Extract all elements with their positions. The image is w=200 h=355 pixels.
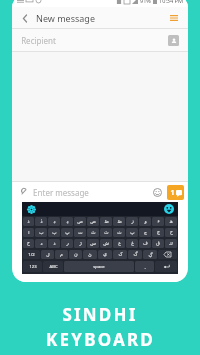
button[interactable]: ڏ xyxy=(35,217,47,226)
button[interactable]: Recipient xyxy=(12,29,188,51)
button[interactable]: Send xyxy=(167,185,184,200)
button[interactable]: گ xyxy=(128,250,142,259)
button[interactable]: ٿ xyxy=(87,228,99,237)
button[interactable]: ص xyxy=(74,217,86,226)
button[interactable]: غ xyxy=(126,239,138,248)
button[interactable]: م xyxy=(55,250,68,259)
staticText: ظ xyxy=(117,219,122,224)
button[interactable]: More options xyxy=(167,11,181,25)
button[interactable]: ڳ xyxy=(143,250,157,259)
staticText: ض xyxy=(90,219,96,224)
button[interactable]: Emoji xyxy=(151,186,164,199)
button[interactable]: و xyxy=(139,217,151,226)
button[interactable]: ڙ xyxy=(74,239,86,248)
button[interactable]: ظ xyxy=(113,217,125,226)
staticText: ي xyxy=(103,252,107,257)
staticText: د xyxy=(40,241,43,246)
staticText: New message xyxy=(36,12,95,24)
button[interactable]: ذ xyxy=(48,239,60,248)
button[interactable]: ٽ xyxy=(100,228,112,237)
button[interactable]: ڍ xyxy=(61,217,73,226)
button[interactable]: ط xyxy=(100,217,112,226)
staticText: ء xyxy=(157,219,160,224)
button[interactable]: ڀ xyxy=(61,228,73,237)
button[interactable]: Enter xyxy=(155,261,177,272)
staticText: . xyxy=(144,264,146,270)
button[interactable]: Backspace xyxy=(158,250,177,259)
button[interactable]: ب xyxy=(35,228,47,237)
staticText: ڻ xyxy=(88,252,92,257)
staticText: خ xyxy=(27,241,30,246)
staticText: ڏ xyxy=(40,219,43,224)
button[interactable]: ك xyxy=(165,239,177,248)
staticText: KEYBOARD xyxy=(46,328,155,351)
button[interactable]: ن xyxy=(69,250,82,259)
button[interactable]: 123 xyxy=(23,261,42,272)
button[interactable]: ي xyxy=(98,250,112,259)
button[interactable]: پ xyxy=(126,228,138,237)
staticText: ا xyxy=(28,230,30,235)
staticText: م xyxy=(60,252,63,257)
button[interactable]: Attach xyxy=(18,186,30,198)
staticText: 123 xyxy=(29,264,37,270)
staticText: ڀ xyxy=(65,230,70,235)
button[interactable]: ض xyxy=(87,217,99,226)
button[interactable]: ک xyxy=(113,250,127,259)
button[interactable]: Back xyxy=(12,7,188,28)
staticText: ڄ xyxy=(157,230,160,235)
staticText: پ xyxy=(130,230,135,235)
button[interactable]: ر xyxy=(61,239,73,248)
staticText: ABC xyxy=(49,264,58,270)
staticText: ڌ xyxy=(27,219,30,224)
button[interactable]: ABC xyxy=(43,261,63,272)
button[interactable]: ڌ xyxy=(23,217,34,226)
staticText: 1/2 xyxy=(28,252,35,258)
button[interactable]: ا xyxy=(23,228,34,237)
button[interactable]: ع xyxy=(113,239,125,248)
button[interactable]: ڄ xyxy=(152,228,164,237)
staticText: 10:34 PM xyxy=(159,0,183,4)
staticText: ف xyxy=(143,241,148,246)
staticText: ل xyxy=(46,252,50,257)
staticText: س xyxy=(90,241,96,246)
button[interactable]: ش xyxy=(100,239,112,248)
button[interactable]: ج xyxy=(139,228,151,237)
staticText: ن xyxy=(74,252,78,257)
button[interactable]: ل xyxy=(41,250,54,259)
button[interactable]: space xyxy=(64,261,134,272)
staticText: ج xyxy=(144,230,147,235)
staticText: ص xyxy=(77,219,83,224)
staticText: ٻ xyxy=(52,230,57,235)
button[interactable]: ف xyxy=(139,239,151,248)
staticText: ط xyxy=(104,219,109,224)
button[interactable]: ٻ xyxy=(48,228,60,237)
button[interactable]: ڻ xyxy=(83,250,97,259)
button[interactable]: ث xyxy=(113,228,125,237)
button[interactable]: د xyxy=(35,239,47,248)
button[interactable]: Keyboard settings xyxy=(25,203,37,215)
staticText: ذ xyxy=(53,241,56,246)
staticText: ڳ xyxy=(148,252,153,257)
staticText: Recipient xyxy=(21,35,56,46)
button[interactable]: س xyxy=(87,239,99,248)
button[interactable]: Emoji keyboard xyxy=(163,203,175,215)
button[interactable]: ڊ xyxy=(48,217,60,226)
button[interactable]: ح xyxy=(165,228,177,237)
button[interactable]: 1/2 xyxy=(23,250,40,259)
button[interactable]: Back xyxy=(19,12,31,24)
staticText: ك xyxy=(169,241,173,246)
staticText: ڊ xyxy=(53,219,56,224)
button[interactable]: ق xyxy=(152,239,164,248)
button[interactable]: . xyxy=(135,261,154,272)
staticText: ق xyxy=(156,241,160,246)
staticText: ز xyxy=(131,219,134,224)
button[interactable]: خ xyxy=(23,239,34,248)
button[interactable]: ھ xyxy=(165,217,177,226)
button[interactable]: ت xyxy=(74,228,86,237)
button[interactable]: Add contact xyxy=(168,35,179,46)
staticText: SINDHI xyxy=(62,303,138,326)
button[interactable]: ز xyxy=(126,217,138,226)
staticText: ب xyxy=(39,230,44,235)
button[interactable]: Enter message xyxy=(33,187,151,198)
button[interactable]: ء xyxy=(152,217,164,226)
